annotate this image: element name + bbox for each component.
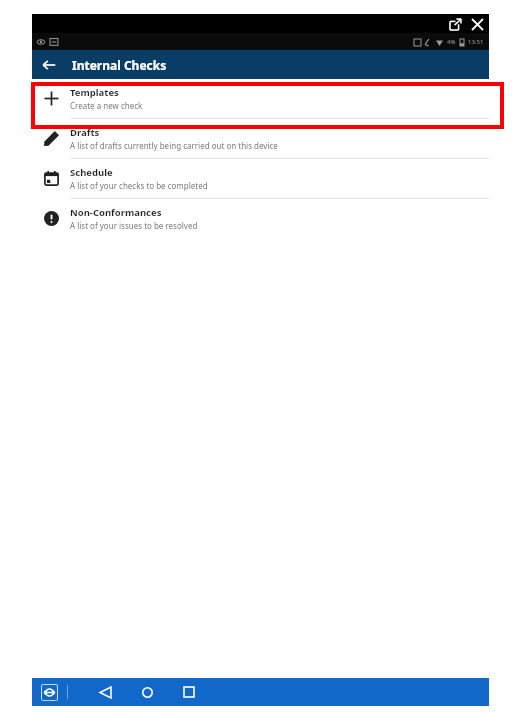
- staticText: A list of your issues to be resolved: [70, 220, 198, 231]
- staticText: Schedule: [70, 166, 113, 179]
- button[interactable]: Non-Conformances: [32, 199, 489, 238]
- button[interactable]: Schedule: [32, 159, 489, 199]
- staticText: Templates: [70, 86, 119, 99]
- staticText: A list of drafts currently being carried…: [70, 140, 278, 151]
- button[interactable]: Back: [32, 50, 66, 79]
- button[interactable]: Home: [132, 678, 162, 706]
- staticText: Create a new check: [70, 100, 143, 111]
- button[interactable]: Open in new window: [447, 16, 463, 32]
- button[interactable]: Back: [90, 678, 120, 706]
- staticText: 13:51: [468, 38, 484, 46]
- button[interactable]: Templates: [32, 79, 489, 119]
- button[interactable]: Recent apps: [174, 678, 204, 706]
- staticText: 4%: [447, 38, 456, 46]
- button[interactable]: Close: [469, 16, 485, 32]
- staticText: Internal Checks: [72, 57, 167, 73]
- staticText: Drafts: [70, 126, 100, 139]
- staticText: A list of your checks to be completed: [70, 180, 208, 191]
- button[interactable]: Drafts: [32, 119, 489, 159]
- staticText: Non-Conformances: [70, 206, 162, 219]
- button[interactable]: Remote session: [41, 684, 58, 701]
